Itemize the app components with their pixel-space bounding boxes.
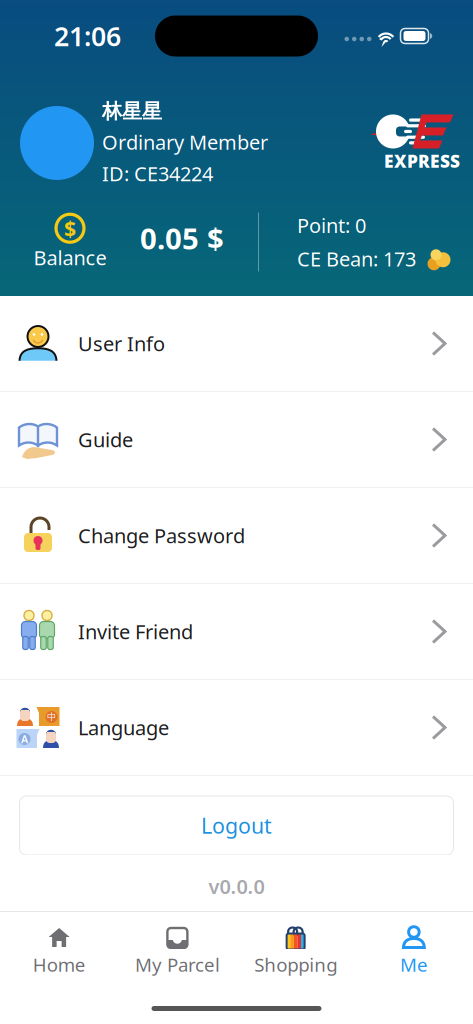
staticText: Guide	[78, 426, 133, 453]
staticText: Logout	[201, 811, 272, 840]
staticText: Shopping	[254, 952, 337, 977]
staticText: Ordinary Member	[102, 129, 268, 155]
staticText: Change Password	[78, 522, 245, 549]
staticText: ID: CE34224	[102, 160, 213, 187]
button[interactable]: My Parcel	[118, 912, 236, 972]
button[interactable]: User Info	[0, 296, 473, 392]
staticText: 21:06	[54, 18, 121, 54]
button[interactable]: $	[0, 211, 258, 273]
button[interactable]: Change Password	[0, 488, 473, 584]
staticText: Balance	[33, 244, 106, 271]
staticText: Language	[78, 714, 169, 741]
staticText: A	[21, 732, 28, 746]
staticText: v0.0.0	[208, 873, 264, 900]
button[interactable]: Home	[0, 912, 118, 972]
staticText: CE Bean: 173	[297, 245, 416, 272]
staticText: 中	[47, 711, 56, 723]
button[interactable]: 中	[0, 680, 473, 776]
staticText: EXPRESS	[384, 149, 460, 172]
button[interactable]: Invite Friend	[0, 584, 473, 680]
button[interactable]: Shopping	[236, 912, 355, 972]
staticText: User Info	[78, 330, 165, 357]
staticText: Me	[400, 952, 428, 977]
button[interactable]: Me	[355, 912, 473, 972]
staticText: Home	[33, 952, 86, 977]
staticText: Invite Friend	[78, 618, 193, 645]
staticText: Point: 0	[297, 212, 366, 238]
staticText: 0.05 $	[140, 218, 224, 257]
staticText: 林星星	[102, 99, 162, 124]
staticText: My Parcel	[135, 952, 220, 977]
staticText: $	[64, 214, 76, 242]
button[interactable]: Guide	[0, 392, 473, 488]
button[interactable]: Logout	[19, 796, 453, 855]
